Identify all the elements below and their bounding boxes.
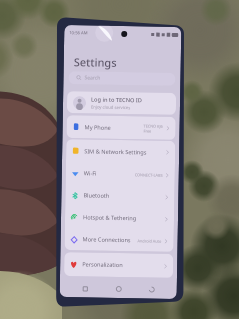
staticText: SIM & Network Settings (84, 147, 147, 156)
button[interactable]: Back (144, 281, 160, 298)
staticText: 10:56 AM (69, 30, 88, 36)
staticText: Personalization (82, 260, 123, 269)
button[interactable]: Bluetooth (65, 184, 175, 208)
button[interactable]: More Connections (64, 228, 174, 252)
button[interactable]: Home (111, 281, 127, 297)
staticText: Android Auto (138, 238, 162, 244)
staticText: More Connections (83, 235, 131, 244)
button[interactable]: Personalization (64, 252, 173, 278)
staticText: Log in to TECNO ID (91, 95, 142, 104)
staticText: Settings (74, 54, 117, 70)
button[interactable]: Hotspot & Tethering (65, 206, 174, 230)
staticText: Enjoy cloud services (91, 104, 131, 111)
staticText: Hotspot & Tethering (83, 213, 137, 222)
button[interactable]: Log in to TECNO ID (67, 91, 176, 115)
staticText: Wi-Fi (84, 169, 97, 178)
button[interactable]: SIM & Network Settings (66, 139, 175, 164)
staticText: My Phone (84, 123, 112, 132)
staticText: CONNECT-LABS (135, 172, 163, 178)
button[interactable]: Search (68, 71, 176, 86)
button[interactable]: Wi-Fi (66, 162, 175, 186)
button[interactable]: Recents (77, 280, 93, 297)
button[interactable]: My Phone (66, 115, 176, 140)
staticText: TECNO KJ6 Free (143, 123, 164, 134)
staticText: Search (84, 74, 100, 82)
staticText: Bluetooth (83, 191, 109, 200)
